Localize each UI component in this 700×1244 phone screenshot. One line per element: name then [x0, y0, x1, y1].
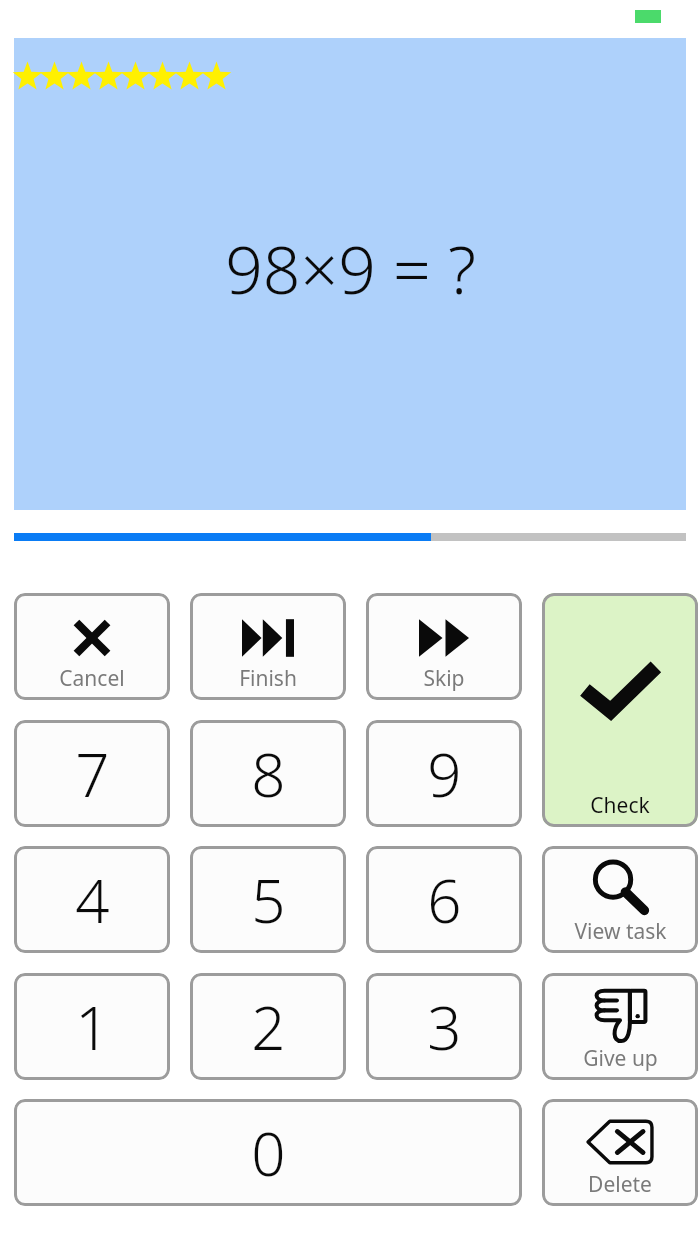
- button[interactable]: 3: [366, 973, 522, 1080]
- button[interactable]: Give up: [542, 973, 698, 1080]
- staticText: 9: [427, 733, 462, 815]
- button[interactable]: 5: [190, 846, 346, 953]
- staticText: 1: [75, 986, 110, 1068]
- button[interactable]: 2: [190, 973, 346, 1080]
- button[interactable]: Finish: [190, 593, 346, 700]
- button[interactable]: 4: [14, 846, 170, 953]
- staticText: Skip: [423, 664, 465, 693]
- staticText: Finish: [239, 664, 297, 693]
- staticText: Delete: [588, 1170, 652, 1199]
- button[interactable]: Skip: [366, 593, 522, 700]
- staticText: View task: [574, 917, 667, 946]
- staticText: 8: [251, 733, 286, 815]
- button[interactable]: 9: [366, 720, 522, 827]
- button[interactable]: 7: [14, 720, 170, 827]
- staticText: 2: [251, 986, 286, 1068]
- staticText: Cancel: [59, 664, 125, 693]
- button[interactable]: Cancel: [14, 593, 170, 700]
- staticText: Check: [590, 791, 650, 820]
- button[interactable]: 1: [14, 973, 170, 1080]
- staticText: 3: [427, 986, 462, 1068]
- staticText: Give up: [583, 1044, 658, 1073]
- staticText: 98×9 = ?: [225, 223, 476, 313]
- button[interactable]: Check: [542, 593, 698, 827]
- button[interactable]: 6: [366, 846, 522, 953]
- staticText: 6: [427, 859, 462, 941]
- staticText: 0: [251, 1112, 286, 1194]
- button[interactable]: 8: [190, 720, 346, 827]
- staticText: 4: [75, 859, 110, 941]
- staticText: 7: [75, 733, 110, 815]
- button[interactable]: Delete: [542, 1099, 698, 1206]
- staticText: 5: [251, 859, 286, 941]
- button[interactable]: View task: [542, 846, 698, 953]
- button[interactable]: 0: [14, 1099, 522, 1206]
